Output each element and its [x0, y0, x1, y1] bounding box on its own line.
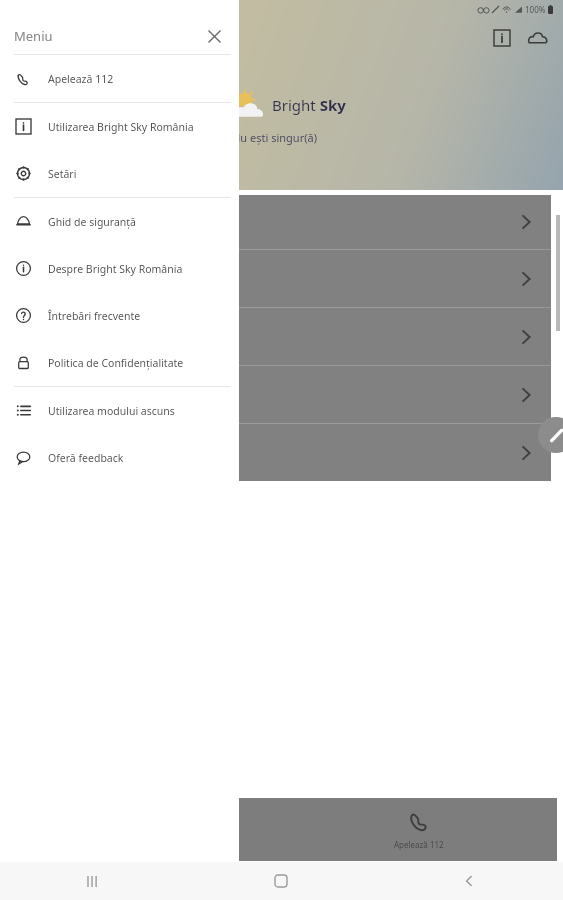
button[interactable]: Setări — [0, 150, 239, 197]
staticText: Politica de Confidențialitate — [48, 356, 184, 370]
button[interactable]: Despre Bright Sky România — [0, 245, 239, 292]
staticText: Despre Bright Sky România — [48, 262, 183, 276]
button[interactable]: Utilizarea Bright Sky România — [0, 103, 239, 150]
button[interactable]: Întrebări frecvente — [0, 292, 239, 339]
staticText: Întrebări frecvente — [48, 309, 141, 323]
button[interactable]: Edit — [538, 417, 563, 453]
staticText: Ghid de siguranță — [48, 215, 137, 229]
button[interactable] — [12, 366, 551, 423]
button[interactable]: Back — [375, 862, 563, 900]
button[interactable] — [12, 308, 551, 365]
staticText: Setări — [48, 167, 77, 181]
button[interactable]: Politica de Confidențialitate — [0, 339, 239, 386]
button[interactable]: Oferă feedback — [0, 434, 239, 481]
button[interactable]: Information — [488, 24, 516, 52]
button[interactable]: Cloud — [523, 24, 551, 52]
button[interactable]: Apelează 112 — [0, 55, 239, 102]
button[interactable]: Ghid de siguranță — [0, 198, 239, 245]
staticText: Oferă feedback — [48, 451, 124, 465]
button[interactable]: Recents — [0, 862, 187, 900]
button[interactable]: Home — [187, 862, 375, 900]
button[interactable]: Utilizarea modului ascuns — [0, 387, 239, 434]
button[interactable] — [12, 250, 551, 307]
staticText: Nu ești singur(ă) — [232, 130, 317, 145]
button[interactable]: Close menu — [199, 21, 229, 51]
staticText: Apelează 112 — [48, 72, 114, 86]
staticText: Bright Sky — [272, 95, 346, 115]
staticText: Utilizarea modului ascuns — [48, 404, 175, 418]
staticText: Utilizarea Bright Sky România — [48, 120, 194, 134]
button[interactable] — [12, 424, 551, 481]
button[interactable] — [12, 195, 551, 249]
staticText: 100% — [525, 4, 546, 15]
staticText: Apelează 112 — [394, 839, 444, 850]
button[interactable]: Găsește servicii de asistență — [6, 798, 281, 861]
staticText: Meniu — [14, 27, 53, 45]
button[interactable]: Apelează 112 — [281, 798, 557, 861]
